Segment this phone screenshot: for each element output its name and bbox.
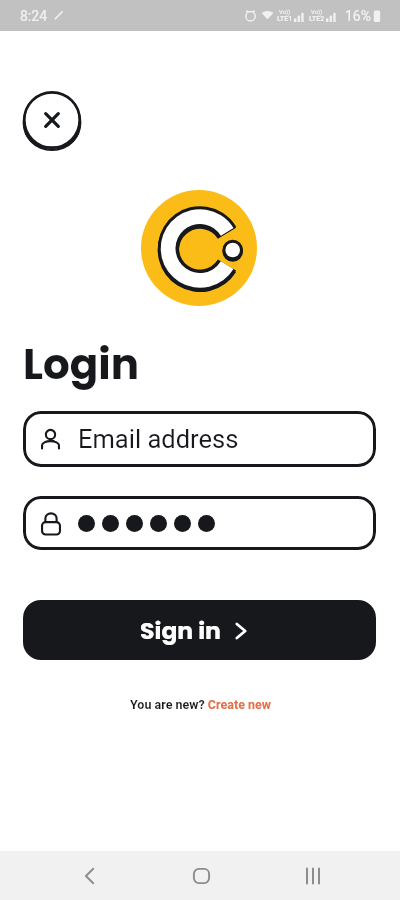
staticText: Vo)) — [279, 8, 291, 15]
button[interactable] — [23, 496, 376, 550]
staticText: You are new? Create new — [130, 697, 271, 712]
staticText: 16% — [345, 8, 371, 24]
button[interactable]: Back — [64, 851, 114, 900]
staticText: Vo)) — [311, 8, 323, 15]
button[interactable]: Home — [176, 851, 226, 900]
staticText: 8:24 — [20, 8, 47, 24]
staticText: Sign in — [140, 614, 221, 647]
button[interactable]: You are new? Create new — [124, 694, 277, 715]
button[interactable]: Close — [21, 89, 83, 151]
staticText: Email address — [78, 424, 239, 454]
button[interactable]: Email address — [23, 411, 376, 467]
staticText: Login — [23, 335, 140, 394]
button[interactable]: Recent apps — [288, 851, 338, 900]
staticText: LTE1 — [277, 15, 293, 23]
button[interactable]: Sign in — [23, 600, 376, 660]
staticText: LTE2 — [309, 15, 325, 23]
